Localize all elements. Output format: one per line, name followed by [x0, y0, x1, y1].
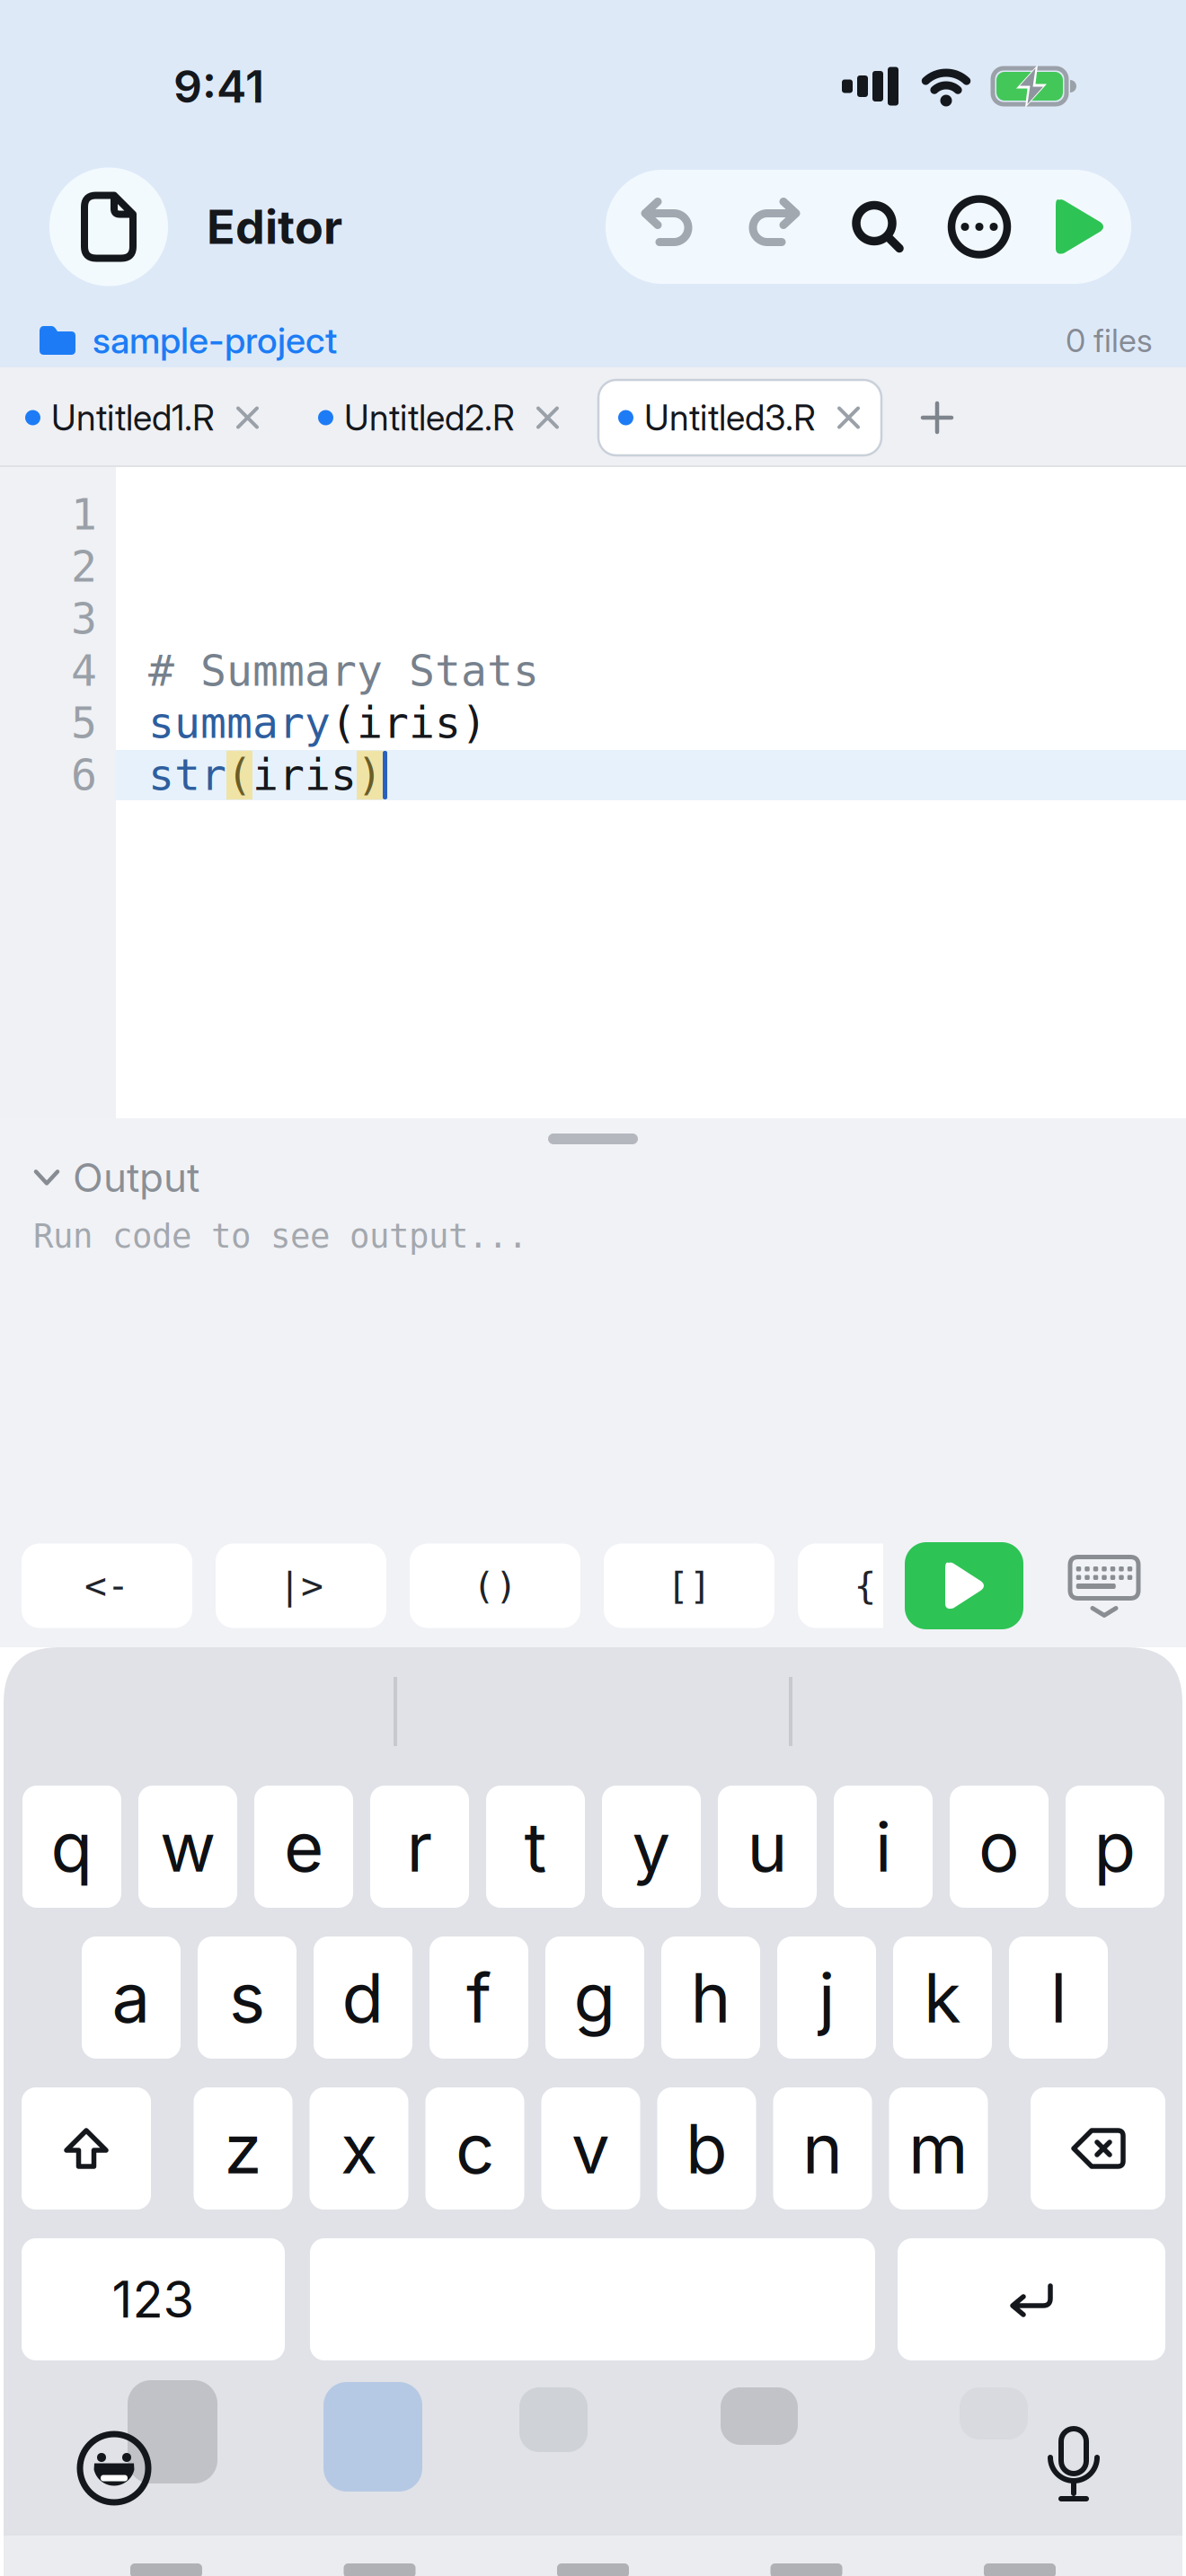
button[interactable]: k [893, 1936, 992, 2059]
button[interactable]: o [950, 1786, 1049, 1908]
staticText: y [632, 1803, 671, 1890]
staticText: n [802, 2105, 843, 2192]
staticText: (iris) [331, 699, 487, 748]
staticText: a [112, 1954, 150, 2041]
button[interactable]: d [314, 1936, 412, 2059]
button[interactable]: g [545, 1936, 644, 2059]
staticText: v [571, 2105, 610, 2192]
button[interactable]: New file [914, 394, 960, 441]
button[interactable]: c [425, 2087, 524, 2210]
button[interactable]: () [410, 1544, 580, 1628]
staticText: 4 [71, 647, 97, 695]
staticText: 0 files [1066, 320, 1153, 361]
button[interactable]: Untitled1.R [5, 380, 280, 455]
staticText: 123 [112, 2267, 195, 2331]
button[interactable]: Untitled2.R [298, 380, 580, 455]
button[interactable]: Run code [905, 1542, 1023, 1629]
button[interactable]: r [370, 1786, 469, 1908]
staticText: ( [226, 751, 252, 800]
staticText: 2 [71, 542, 97, 591]
staticText: { [854, 1565, 876, 1607]
staticText: i [875, 1803, 891, 1890]
staticText: ) [357, 751, 383, 800]
staticText: 9:41 [173, 58, 264, 115]
button[interactable]: <- [22, 1544, 192, 1628]
button[interactable]: a [82, 1936, 181, 2059]
staticText: l [1050, 1954, 1067, 2041]
button[interactable]: i [834, 1786, 933, 1908]
staticText: Untitled2.R [344, 395, 515, 440]
staticText: c [456, 2105, 494, 2192]
button[interactable]: Emoji [80, 2434, 148, 2502]
staticText: |> [279, 1565, 323, 1607]
button[interactable]: Output [34, 1152, 199, 1203]
staticText: g [574, 1954, 616, 2041]
button[interactable]: u [718, 1786, 817, 1908]
button[interactable]: w [138, 1786, 237, 1908]
staticText: summary [148, 699, 331, 748]
button[interactable]: Return [898, 2238, 1165, 2360]
staticText: <- [84, 1565, 129, 1607]
button[interactable]: l [1009, 1936, 1108, 2059]
button[interactable]: t [486, 1786, 585, 1908]
staticText: # Summary Stats [148, 647, 539, 695]
staticText: 3 [71, 594, 97, 643]
staticText: b [686, 2105, 728, 2192]
staticText: j [819, 1954, 835, 2041]
staticText: q [51, 1803, 93, 1890]
button[interactable]: Shift [22, 2087, 151, 2210]
staticText: k [924, 1954, 961, 2041]
button[interactable]: [] [604, 1544, 774, 1628]
staticText: o [978, 1803, 1020, 1890]
staticText: w [160, 1803, 216, 1890]
button[interactable]: b [657, 2087, 756, 2210]
button[interactable]: Dictate [1045, 2425, 1102, 2508]
button[interactable]: h [661, 1936, 760, 2059]
staticText: d [342, 1954, 384, 2041]
button[interactable]: More [951, 199, 1007, 255]
button[interactable]: Undo [640, 200, 695, 254]
staticText: str [148, 751, 226, 800]
button[interactable]: |> [216, 1544, 386, 1628]
staticText: Untitled3.R [644, 395, 816, 440]
staticText: p [1094, 1803, 1136, 1890]
staticText: s [229, 1954, 265, 2041]
staticText: sample-project [93, 318, 337, 363]
button[interactable]: e [254, 1786, 353, 1908]
button[interactable]: m [889, 2087, 988, 2210]
button[interactable]: sample-project [36, 318, 337, 363]
staticText: e [284, 1803, 323, 1890]
button[interactable]: Untitled3.R [598, 380, 881, 455]
button[interactable]: Delete [1031, 2087, 1165, 2210]
button[interactable]: q [22, 1786, 121, 1908]
button[interactable]: Dismiss keyboard [1067, 1554, 1141, 1617]
button[interactable]: s [198, 1936, 296, 2059]
button[interactable]: Run [1054, 198, 1104, 256]
staticText: Run code to see output... [33, 1217, 527, 1255]
button[interactable]: Documents [49, 168, 168, 286]
button[interactable]: j [777, 1936, 876, 2059]
button[interactable]: p [1066, 1786, 1164, 1908]
staticText: 6 [71, 751, 97, 800]
button[interactable]: 123 [22, 2238, 285, 2360]
button[interactable]: n [773, 2087, 872, 2210]
button[interactable]: v [541, 2087, 640, 2210]
button[interactable]: f [429, 1936, 528, 2059]
button[interactable]: x [310, 2087, 408, 2210]
staticText: 5 [71, 699, 97, 748]
staticText: () [473, 1565, 518, 1607]
staticText: [] [667, 1565, 712, 1607]
staticText: z [224, 2105, 262, 2192]
staticText: 1 [71, 490, 97, 539]
button[interactable]: Search [852, 201, 904, 253]
button[interactable]: z [194, 2087, 292, 2210]
button[interactable]: { [798, 1544, 883, 1628]
staticText: Output [73, 1152, 199, 1203]
staticText: f [466, 1954, 491, 2041]
staticText: Editor [207, 197, 342, 257]
button[interactable]: y [602, 1786, 701, 1908]
button[interactable]: Redo [746, 200, 801, 254]
staticText: m [908, 2105, 969, 2192]
